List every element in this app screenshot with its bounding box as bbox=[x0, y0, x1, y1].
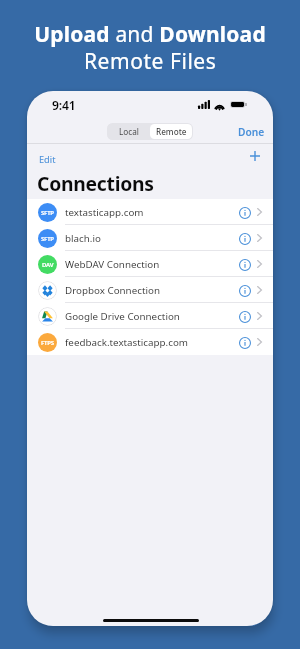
button[interactable]: SFTP bbox=[27, 199, 273, 225]
staticText: Local bbox=[119, 126, 139, 137]
staticText: WebDAV Connection bbox=[65, 258, 160, 271]
button[interactable]: Add connection bbox=[245, 146, 265, 166]
button[interactable]: Info bbox=[236, 204, 253, 221]
staticText: textasticapp.com bbox=[65, 206, 144, 219]
button[interactable]: Local bbox=[108, 124, 150, 139]
staticText: Remote bbox=[156, 126, 187, 137]
button[interactable]: Info bbox=[236, 334, 253, 351]
staticText: Dropbox Connection bbox=[65, 284, 160, 297]
staticText: Done bbox=[238, 125, 265, 139]
staticText: feedback.textasticapp.com bbox=[65, 336, 189, 349]
staticText: FTPS bbox=[41, 339, 54, 347]
staticText: DAV bbox=[42, 261, 54, 269]
staticText: blach.io bbox=[65, 232, 101, 245]
staticText: Connections bbox=[37, 170, 154, 196]
button[interactable]: Google Drive Connection bbox=[27, 303, 273, 329]
button[interactable]: SFTP bbox=[27, 225, 273, 251]
staticText: Edit bbox=[39, 153, 56, 166]
button[interactable]: Dropbox Connection bbox=[27, 277, 273, 303]
button[interactable]: Remote bbox=[150, 124, 192, 139]
staticText: Google Drive Connection bbox=[65, 310, 180, 323]
staticText: SFTP bbox=[41, 235, 54, 243]
staticText: Remote Files bbox=[84, 47, 217, 76]
button[interactable]: Edit bbox=[33, 149, 62, 170]
staticText: SFTP bbox=[41, 209, 54, 217]
button[interactable]: Done bbox=[232, 121, 271, 143]
button[interactable]: Info bbox=[236, 256, 253, 273]
staticText: 9:41 bbox=[52, 97, 76, 114]
button[interactable]: DAV bbox=[27, 251, 273, 277]
staticText: Upload and Download bbox=[34, 20, 266, 49]
button[interactable]: FTPS bbox=[27, 329, 273, 355]
button[interactable]: Info bbox=[236, 308, 253, 325]
button[interactable]: Info bbox=[236, 230, 253, 247]
button[interactable]: Info bbox=[236, 282, 253, 299]
